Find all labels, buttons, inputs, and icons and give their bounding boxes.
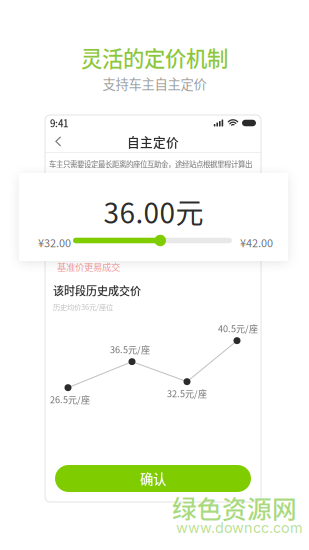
staticText: 基准价更易成交 — [57, 260, 120, 273]
staticText: 36.5元/座 — [110, 343, 150, 356]
staticText: 支持车主自主定价 — [102, 74, 206, 93]
button[interactable]: 确认 — [55, 465, 251, 492]
staticText: 该时段历史成交价 — [53, 282, 141, 298]
staticText: 灵活的定价机制 — [81, 42, 228, 73]
staticText: 26.5元/座 — [50, 393, 90, 406]
staticText: 历史均价36元/座位 — [53, 301, 113, 312]
staticText: 36.00元 — [103, 191, 203, 231]
staticText: 9:41 — [50, 116, 68, 130]
staticText: 40.5元/座 — [218, 322, 258, 335]
staticText: 确认 — [140, 469, 166, 488]
staticText: 车主只需要设定最长距离的座位互助金，途经站点根据里程计算出 — [49, 159, 252, 169]
staticText: www.downcc.com — [176, 519, 303, 536]
staticText: 32.5元/座 — [167, 387, 207, 400]
staticText: ¥32.00 — [38, 234, 71, 250]
staticText: 绿色资源网 — [172, 490, 297, 526]
staticText: 自主定价 — [127, 132, 179, 151]
button[interactable]: 返回 — [45, 131, 70, 152]
staticText: ¥42.00 — [240, 234, 273, 250]
